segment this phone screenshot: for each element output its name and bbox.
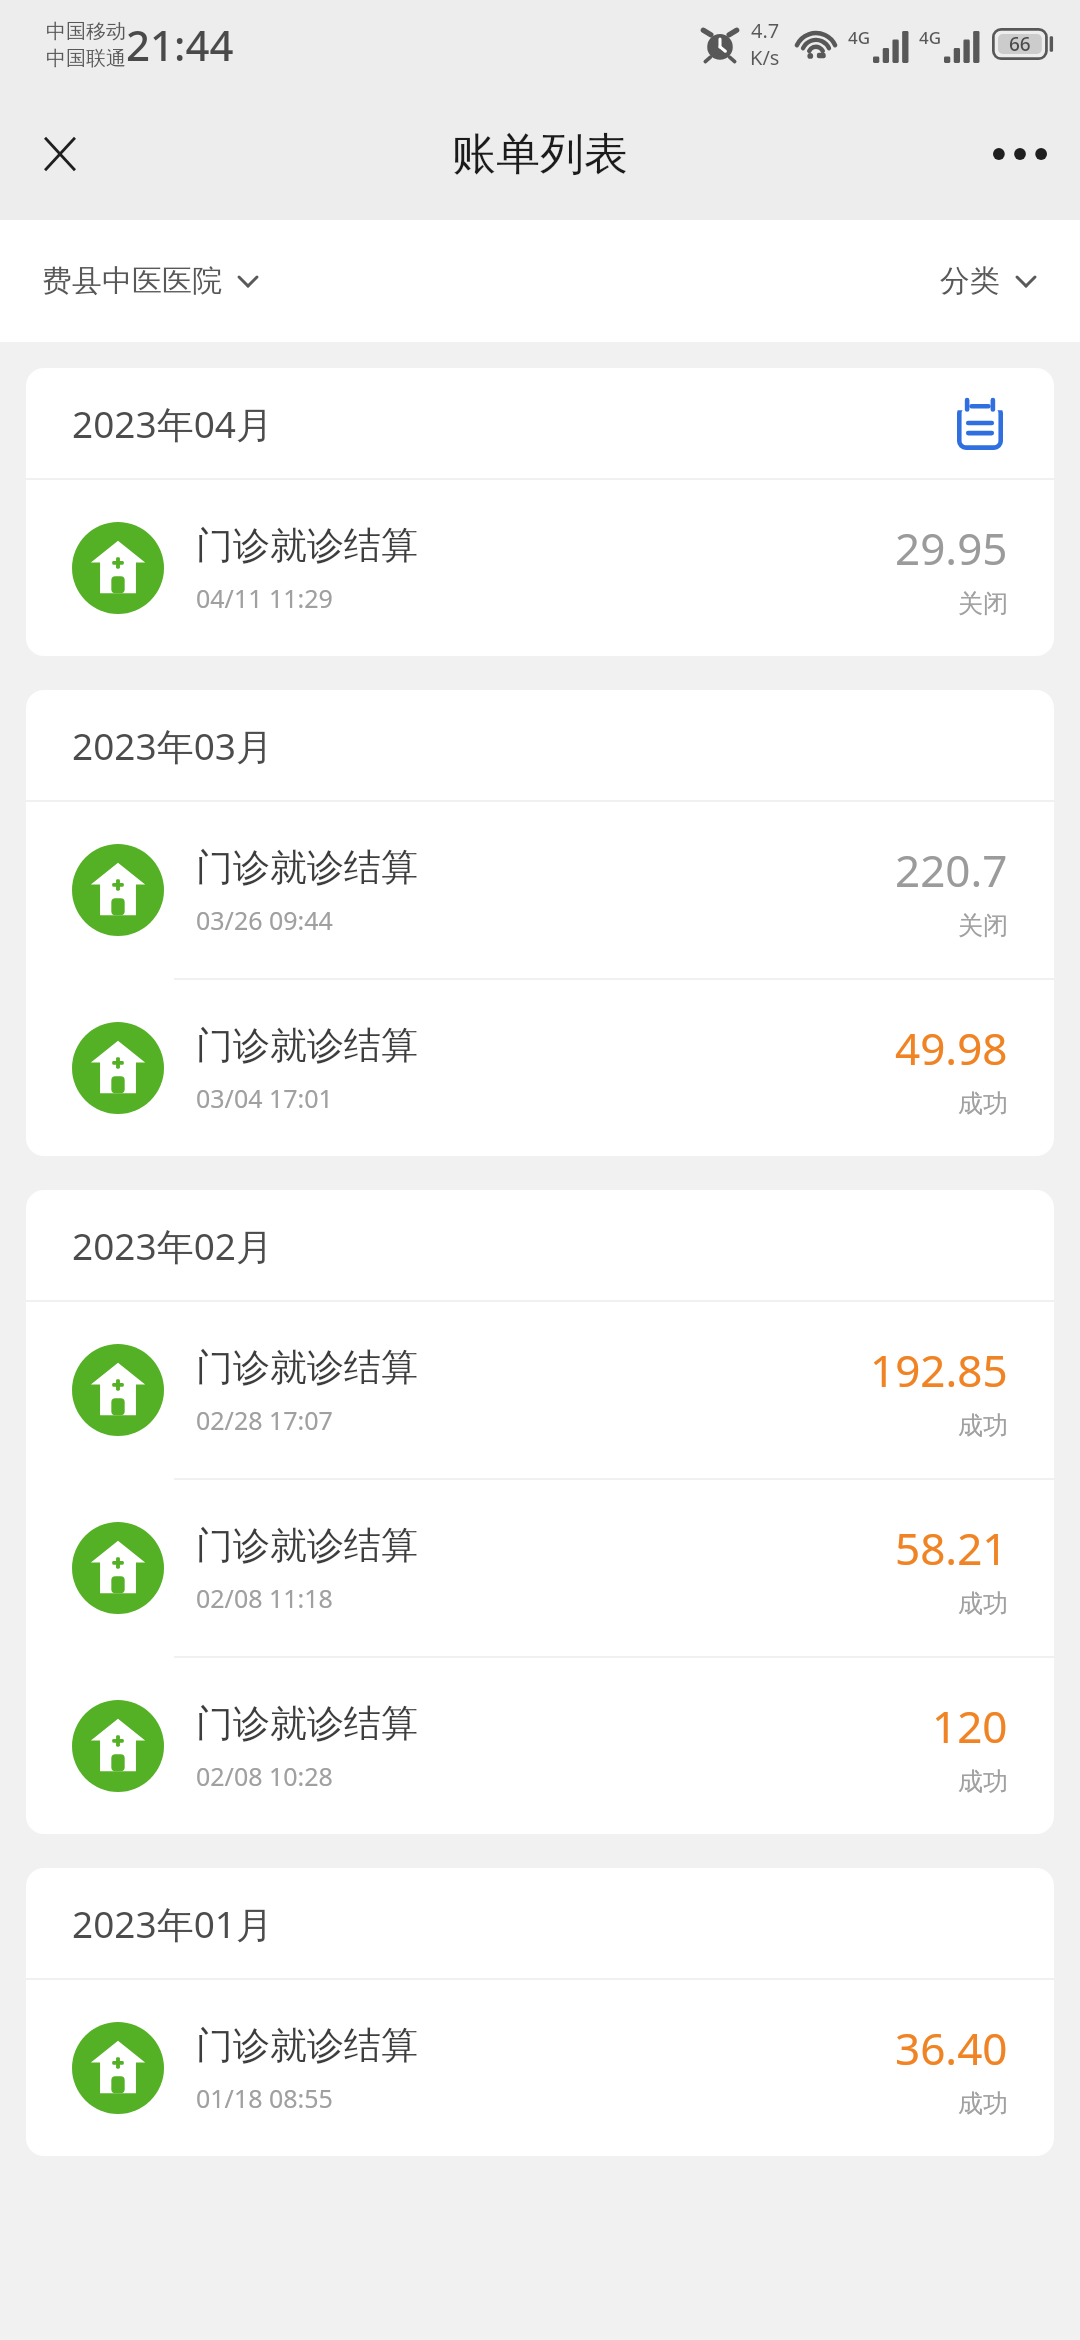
button[interactable]: 门诊就诊结算 <box>26 1302 1054 1478</box>
staticText: 成功 <box>958 1410 1008 1441</box>
staticText: 4G <box>848 26 871 49</box>
staticText: 分类 <box>940 262 1000 300</box>
staticText: 门诊就诊结算 <box>196 1522 418 1569</box>
staticText: 03/26 09:44 <box>196 903 333 937</box>
staticText: 中国联通 <box>46 46 126 71</box>
staticText: 03/04 17:01 <box>196 1081 333 1115</box>
button[interactable]: 门诊就诊结算 <box>26 802 1054 978</box>
button[interactable]: 门诊就诊结算 <box>26 1658 1054 1834</box>
staticText: 成功 <box>958 2088 1008 2119</box>
staticText: 成功 <box>958 1588 1008 1619</box>
staticText: 中国移动 <box>46 19 126 44</box>
staticText: K/s <box>750 44 780 71</box>
staticText: 费县中医医院 <box>42 262 222 300</box>
staticText: 2023年01月 <box>72 1898 273 1949</box>
button[interactable]: Close <box>16 110 104 198</box>
staticText: 36.40 <box>895 2018 1008 2078</box>
button[interactable]: 2023年02月 <box>26 1190 1054 1300</box>
staticText: 66 <box>1009 31 1031 57</box>
staticText: 成功 <box>958 1088 1008 1119</box>
staticText: 58.21 <box>895 1518 1008 1578</box>
staticText: 门诊就诊结算 <box>196 1700 418 1747</box>
staticText: 2023年02月 <box>72 1220 273 1271</box>
staticText: 门诊就诊结算 <box>196 2022 418 2069</box>
staticText: 门诊就诊结算 <box>196 844 418 891</box>
staticText: 2023年03月 <box>72 720 273 771</box>
button[interactable]: 分类 <box>922 246 1056 316</box>
staticText: 220.7 <box>895 840 1008 900</box>
staticText: 门诊就诊结算 <box>196 1022 418 1069</box>
button[interactable]: Calendar filter <box>946 389 1014 457</box>
button[interactable]: 费县中医医院 <box>24 246 278 316</box>
staticText: 04/11 11:29 <box>196 581 333 615</box>
staticText: 4G <box>919 26 942 49</box>
button[interactable]: 2023年03月 <box>26 690 1054 800</box>
staticText: 29.95 <box>895 518 1008 578</box>
staticText: 关闭 <box>958 910 1008 941</box>
staticText: 49.98 <box>895 1018 1008 1078</box>
staticText: 2023年04月 <box>72 398 273 449</box>
staticText: 账单列表 <box>452 127 628 182</box>
button[interactable]: 门诊就诊结算 <box>26 980 1054 1156</box>
staticText: 门诊就诊结算 <box>196 1344 418 1391</box>
button[interactable]: 门诊就诊结算 <box>26 1480 1054 1656</box>
button[interactable]: 门诊就诊结算 <box>26 1980 1054 2156</box>
staticText: 120 <box>932 1696 1008 1756</box>
staticText: 成功 <box>958 1766 1008 1797</box>
staticText: 4.7 <box>751 17 780 44</box>
staticText: 192.85 <box>870 1340 1008 1400</box>
button[interactable]: 门诊就诊结算 <box>26 480 1054 656</box>
staticText: 21:44 <box>126 16 234 73</box>
staticText: 门诊就诊结算 <box>196 522 418 569</box>
staticText: 02/28 17:07 <box>196 1403 333 1437</box>
staticText: 关闭 <box>958 588 1008 619</box>
button[interactable]: More options <box>976 110 1064 198</box>
button[interactable]: 2023年04月 <box>26 368 1054 478</box>
staticText: 02/08 10:28 <box>196 1759 333 1793</box>
staticText: 01/18 08:55 <box>196 2081 333 2115</box>
button[interactable]: 2023年01月 <box>26 1868 1054 1978</box>
staticText: 02/08 11:18 <box>196 1581 333 1615</box>
